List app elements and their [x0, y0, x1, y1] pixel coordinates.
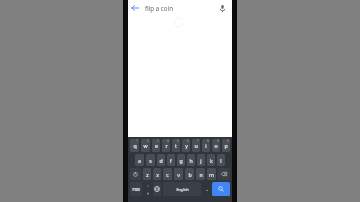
button[interactable]: °: [144, 182, 151, 196]
staticText: o: [214, 142, 218, 149]
staticText: m: [209, 171, 214, 178]
button[interactable]: e: [152, 139, 160, 152]
button[interactable]: y: [182, 139, 190, 152]
staticText: .: [206, 186, 208, 192]
staticText: a: [138, 157, 141, 164]
button[interactable]: s: [146, 154, 155, 166]
staticText: i: [205, 142, 207, 149]
staticText: 1: [136, 139, 138, 143]
staticText: 8: [207, 139, 209, 143]
button[interactable]: n: [196, 168, 205, 180]
staticText: ,: [147, 189, 149, 195]
button[interactable]: h: [187, 154, 195, 166]
button[interactable]: Shift: [130, 168, 141, 180]
button[interactable]: Search: [212, 182, 230, 196]
button[interactable]: Change language: [153, 182, 161, 196]
button[interactable]: o: [212, 139, 220, 152]
button[interactable]: v: [174, 168, 183, 180]
staticText: l: [220, 157, 222, 164]
button[interactable]: x: [153, 168, 161, 180]
button[interactable]: p: [222, 139, 230, 152]
staticText: y: [185, 142, 188, 149]
button[interactable]: a: [135, 154, 144, 166]
staticText: h: [189, 157, 193, 164]
button[interactable]: Voice search: [214, 0, 230, 16]
staticText: q: [133, 142, 137, 149]
button[interactable]: q: [130, 139, 139, 152]
staticText: b: [188, 171, 192, 178]
staticText: e: [155, 142, 158, 149]
staticText: x: [156, 171, 159, 178]
staticText: 3: [157, 139, 159, 143]
button[interactable]: ?123: [130, 182, 142, 196]
staticText: 5: [177, 139, 179, 143]
staticText: r: [165, 142, 168, 149]
button[interactable]: c: [163, 168, 172, 180]
staticText: 9: [217, 139, 219, 143]
button[interactable]: b: [185, 168, 194, 180]
staticText: 6: [187, 139, 189, 143]
staticText: 0: [227, 139, 229, 143]
button[interactable]: u: [192, 139, 200, 152]
button[interactable]: w: [141, 139, 150, 152]
staticText: 2: [147, 139, 149, 143]
button[interactable]: k: [207, 154, 215, 166]
button[interactable]: .: [203, 182, 210, 196]
staticText: 4: [167, 139, 169, 143]
button[interactable]: l: [217, 154, 225, 166]
staticText: English: [176, 187, 189, 192]
staticText: °: [147, 184, 149, 189]
button[interactable]: Back: [128, 1, 142, 15]
staticText: ?123: [132, 187, 140, 192]
button[interactable]: flip a coin: [145, 0, 214, 16]
staticText: z: [146, 171, 149, 178]
staticText: t: [175, 142, 177, 149]
button[interactable]: t: [172, 139, 180, 152]
button[interactable]: m: [207, 168, 216, 180]
button[interactable]: English: [163, 182, 201, 196]
staticText: w: [143, 142, 148, 149]
button[interactable]: f: [167, 154, 175, 166]
staticText: d: [159, 157, 163, 164]
button[interactable]: j: [197, 154, 205, 166]
staticText: k: [210, 157, 213, 164]
staticText: p: [224, 142, 228, 149]
button[interactable]: d: [157, 154, 165, 166]
staticText: flip a coin: [145, 4, 173, 12]
staticText: n: [199, 171, 203, 178]
staticText: j: [200, 157, 202, 164]
button[interactable]: g: [177, 154, 185, 166]
staticText: c: [166, 171, 169, 178]
button[interactable]: i: [202, 139, 210, 152]
button[interactable]: Backspace: [218, 168, 230, 180]
staticText: u: [194, 142, 198, 149]
staticText: g: [179, 157, 183, 164]
staticText: 7: [197, 139, 199, 143]
staticText: f: [170, 157, 172, 164]
button[interactable]: r: [162, 139, 170, 152]
staticText: s: [149, 157, 152, 164]
button[interactable]: z: [143, 168, 151, 180]
staticText: v: [177, 171, 180, 178]
